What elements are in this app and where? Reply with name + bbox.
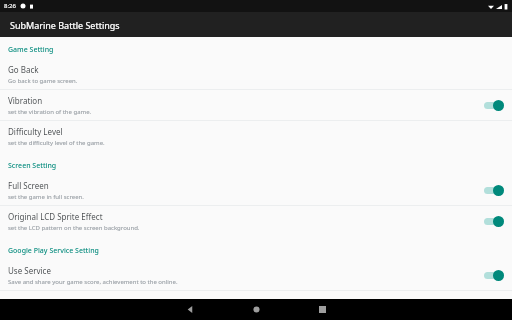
staticText: Google Play Service Setting [8,246,99,256]
button[interactable]: Vibration [0,90,512,120]
staticText: set the game in full screen. [8,193,84,201]
staticText: Go back to game screen. [8,77,78,85]
button[interactable]: Original LCD Sprite Effect [0,206,512,236]
staticText: SubMarine Battle Settings [10,19,120,31]
staticText: Original LCD Sprite Effect [8,211,103,222]
staticText: set the LCD pattern on the screen backgr… [8,224,140,232]
button[interactable]: Recent apps [289,299,355,320]
staticText: Difficulty Level [8,126,63,137]
button[interactable]: Full Screen [0,175,512,205]
button[interactable]: Home [223,299,289,320]
staticText: Full Screen [8,180,49,191]
staticText: Game Setting [8,45,54,55]
button[interactable]: Difficulty Level [0,121,512,151]
staticText: 8:26 [4,2,16,10]
staticText: Use Service [8,265,51,276]
staticText: Go Back [8,64,39,75]
staticText: set the vibration of the game. [8,108,92,116]
staticText: set the difficulty level of the game. [8,139,105,147]
button[interactable]: Go Back [0,59,512,89]
staticText: Save and share your game score, achievem… [8,278,178,286]
button[interactable]: Back [157,299,223,320]
button[interactable]: Use Service [0,260,512,290]
staticText: Vibration [8,95,43,106]
staticText: Screen Setting [8,161,57,171]
